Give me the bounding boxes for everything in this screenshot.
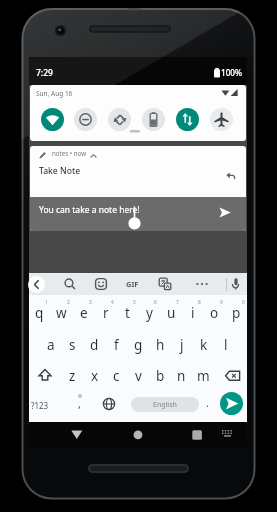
staticText: 7	[176, 299, 179, 306]
staticText: notes • now	[52, 149, 87, 157]
button[interactable]: .	[201, 394, 213, 410]
staticText: j	[180, 336, 184, 354]
staticText: 0	[242, 299, 245, 306]
staticText: z	[69, 367, 76, 385]
staticText: u	[167, 304, 176, 322]
button[interactable]	[94, 277, 108, 291]
button[interactable]: r	[95, 301, 116, 325]
button[interactable]: English	[131, 397, 199, 412]
staticText: c	[113, 367, 120, 385]
staticText: GIF	[126, 279, 139, 289]
staticText: o	[210, 304, 219, 322]
button[interactable]	[37, 368, 53, 384]
staticText: v	[135, 367, 142, 385]
button[interactable]: a	[40, 333, 61, 357]
button[interactable]: l	[215, 333, 236, 357]
button[interactable]: x	[84, 364, 105, 388]
staticText: 7:29	[36, 67, 53, 79]
staticText: 9	[220, 299, 223, 306]
button[interactable]: q	[29, 301, 50, 325]
button[interactable]: b	[150, 364, 171, 388]
staticText: 3	[89, 299, 92, 306]
button[interactable]	[195, 277, 209, 291]
staticText: i	[191, 304, 195, 322]
button[interactable]: w	[51, 301, 72, 325]
button[interactable]: n	[171, 364, 192, 388]
staticText: h	[156, 336, 165, 354]
button[interactable]: g	[128, 333, 149, 357]
staticText: q	[35, 304, 44, 322]
button[interactable]	[131, 428, 145, 442]
button[interactable]: j	[171, 333, 192, 357]
staticText: r	[103, 304, 109, 322]
staticText: .	[206, 395, 209, 410]
button[interactable]	[108, 108, 131, 131]
button[interactable]	[102, 397, 116, 411]
button[interactable]	[224, 369, 242, 384]
button[interactable]: m	[193, 364, 214, 388]
button[interactable]: z	[62, 364, 83, 388]
staticText: e	[80, 304, 88, 322]
button[interactable]: GIF	[117, 274, 147, 294]
staticText: 5	[133, 299, 136, 306]
button[interactable]: h	[150, 333, 171, 357]
button[interactable]: p	[226, 301, 247, 325]
button[interactable]	[218, 207, 232, 220]
button[interactable]	[74, 108, 97, 131]
button[interactable]: e	[73, 301, 94, 325]
button[interactable]	[158, 277, 172, 291]
staticText: l	[224, 336, 228, 354]
staticText: Sun, Aug 16	[36, 89, 73, 98]
button[interactable]	[190, 428, 204, 442]
button[interactable]	[229, 277, 243, 291]
button[interactable]: s	[62, 333, 83, 357]
staticText: 6	[154, 299, 157, 306]
button[interactable]: ,	[73, 395, 85, 411]
button[interactable]	[210, 108, 233, 131]
button[interactable]: You can take a note here!	[30, 197, 246, 231]
button[interactable]	[176, 108, 199, 131]
staticText: m	[197, 367, 210, 385]
staticText: x	[91, 367, 99, 385]
staticText: 100%	[221, 67, 243, 78]
button[interactable]	[69, 428, 85, 441]
button[interactable]: ?123	[27, 397, 53, 413]
staticText: g	[134, 336, 143, 354]
button[interactable]: notes • now	[30, 146, 246, 231]
button[interactable]	[220, 392, 243, 415]
staticText: 4	[111, 299, 114, 306]
staticText: 8	[198, 299, 201, 306]
button[interactable]	[63, 277, 77, 291]
staticText: y	[146, 304, 153, 322]
button[interactable]: k	[193, 333, 214, 357]
button[interactable]: i	[182, 301, 203, 325]
button[interactable]	[220, 428, 235, 441]
staticText: ,	[78, 396, 81, 411]
button[interactable]: c	[106, 364, 127, 388]
staticText: s	[69, 336, 76, 354]
staticText: t	[125, 304, 130, 322]
staticText: a	[47, 336, 55, 354]
staticText: f	[114, 336, 119, 354]
button[interactable]: f	[106, 333, 127, 357]
staticText: ?123	[31, 400, 49, 411]
staticText: k	[200, 336, 208, 354]
button[interactable]: u	[161, 301, 182, 325]
button[interactable]	[41, 108, 64, 131]
staticText: English	[153, 400, 177, 410]
staticText: 2	[67, 299, 70, 306]
button[interactable]: d	[84, 333, 105, 357]
button[interactable]: v	[128, 364, 149, 388]
button[interactable]	[142, 108, 165, 131]
staticText: You can take a note here!	[39, 204, 140, 216]
staticText: p	[232, 304, 241, 322]
button[interactable]	[28, 276, 45, 293]
staticText: n	[177, 367, 186, 385]
button[interactable]: y	[139, 301, 160, 325]
button[interactable]: t	[117, 301, 138, 325]
staticText: Take Note	[39, 165, 81, 177]
button[interactable]: o	[204, 301, 225, 325]
staticText: d	[90, 336, 99, 354]
staticText: w	[56, 304, 67, 322]
staticText: b	[156, 367, 165, 385]
